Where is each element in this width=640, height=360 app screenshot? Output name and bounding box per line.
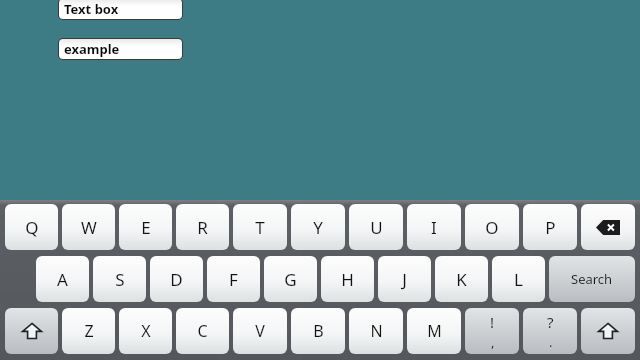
button[interactable]: ? (523, 308, 577, 354)
staticText: Q (25, 216, 39, 239)
staticText: example (64, 40, 120, 58)
staticText: T (255, 216, 265, 239)
button[interactable]: Backspace (581, 204, 635, 250)
staticText: W (81, 216, 97, 239)
staticText: H (341, 268, 354, 291)
button[interactable]: H (321, 256, 374, 302)
button[interactable]: V (233, 308, 287, 354)
staticText: U (370, 216, 383, 239)
button[interactable]: Shift (581, 308, 635, 354)
staticText: N (370, 320, 383, 342)
button[interactable]: P (523, 204, 577, 250)
staticText: D (170, 268, 183, 291)
staticText: ! (490, 312, 495, 332)
button[interactable]: N (349, 308, 403, 354)
button[interactable]: M (407, 308, 461, 354)
staticText: E (141, 216, 151, 239)
staticText: . (549, 333, 553, 351)
staticText: G (284, 268, 297, 291)
button[interactable]: J (378, 256, 431, 302)
staticText: ? (547, 312, 554, 332)
button[interactable]: Shift (5, 308, 58, 354)
button[interactable]: E (119, 204, 172, 250)
staticText: Search (571, 270, 613, 288)
button[interactable]: ! (465, 308, 519, 354)
button[interactable]: F (207, 256, 260, 302)
button[interactable]: D (150, 256, 203, 302)
staticText: B (313, 320, 324, 342)
button[interactable]: W (62, 204, 115, 250)
button[interactable]: Search (549, 256, 635, 302)
staticText: S (115, 268, 125, 291)
staticText: Z (84, 320, 94, 342)
staticText: C (197, 320, 208, 342)
staticText: , (491, 333, 495, 351)
staticText: V (255, 320, 265, 342)
button[interactable]: X (119, 308, 172, 354)
button[interactable]: S (93, 256, 146, 302)
button[interactable]: example (59, 39, 182, 59)
button[interactable]: L (492, 256, 545, 302)
button[interactable]: U (349, 204, 403, 250)
button[interactable]: R (176, 204, 229, 250)
button[interactable]: I (407, 204, 461, 250)
button[interactable]: Q (5, 204, 58, 250)
button[interactable]: C (176, 308, 229, 354)
staticText: X (141, 320, 151, 342)
staticText: R (197, 216, 208, 239)
staticText: J (402, 268, 407, 291)
staticText: A (57, 268, 68, 291)
button[interactable]: O (465, 204, 519, 250)
button[interactable]: Y (291, 204, 345, 250)
button[interactable]: A (36, 256, 89, 302)
button[interactable]: Z (62, 308, 115, 354)
staticText: L (514, 268, 523, 291)
staticText: Text box (64, 0, 119, 18)
button[interactable]: K (435, 256, 488, 302)
button[interactable]: T (233, 204, 287, 250)
staticText: O (485, 216, 499, 239)
staticText: F (229, 268, 238, 291)
staticText: M (427, 320, 442, 342)
staticText: P (545, 216, 556, 239)
staticText: K (456, 268, 467, 291)
button[interactable]: G (264, 256, 317, 302)
staticText: I (431, 216, 437, 239)
button[interactable]: Text box (59, 0, 182, 19)
staticText: Y (313, 216, 323, 239)
button[interactable]: B (291, 308, 345, 354)
